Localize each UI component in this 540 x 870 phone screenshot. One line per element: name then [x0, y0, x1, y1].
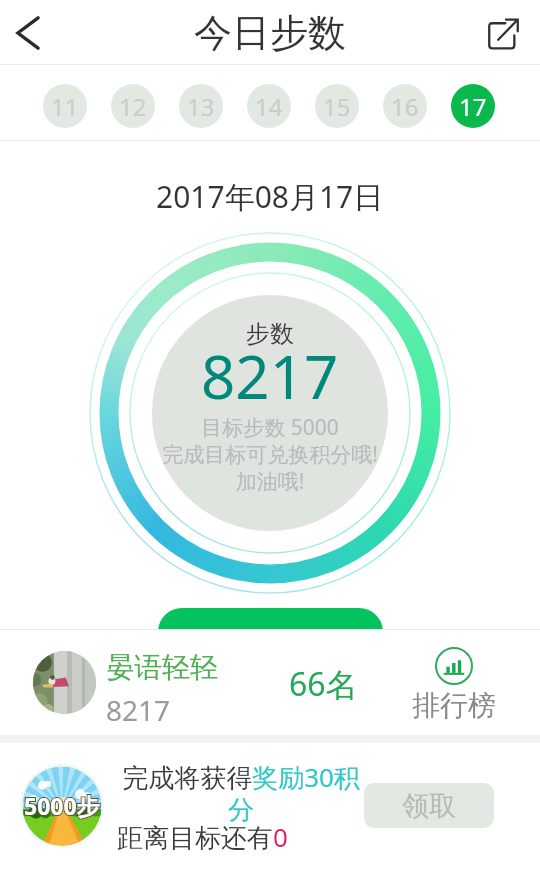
button[interactable]: 16 — [383, 84, 427, 128]
staticText: 5000步 — [24, 790, 100, 821]
staticText: 66名 — [289, 662, 358, 706]
staticText: 16 — [391, 90, 419, 123]
staticText: 15 — [323, 90, 351, 123]
staticText: 8217 — [106, 691, 171, 729]
staticText: 5000步 — [24, 790, 100, 821]
button[interactable]: 13 — [179, 84, 223, 128]
button[interactable]: 排行榜 — [412, 647, 496, 723]
button[interactable]: 晏语轻轻 — [0, 630, 540, 735]
button[interactable]: 14 — [247, 84, 291, 128]
staticText: 距离目标还有0 — [117, 819, 288, 855]
button[interactable]: Share — [484, 5, 540, 61]
staticText: 17 — [459, 90, 487, 123]
button[interactable]: 12 — [111, 84, 155, 128]
button[interactable]: 11 — [43, 84, 87, 128]
staticText: 14 — [255, 90, 283, 123]
button[interactable]: Back — [0, 5, 56, 61]
staticText: 目标步数 5000 完成目标可兑换积分哦! 加油哦! — [162, 413, 378, 496]
staticText: 11 — [51, 90, 79, 123]
staticText: 排行榜 — [412, 688, 496, 723]
staticText: 2017年08月17日 — [156, 176, 384, 217]
staticText: 今日步数 — [194, 9, 346, 57]
staticText: 步数 — [246, 319, 294, 349]
button[interactable] — [158, 608, 383, 686]
button[interactable]: 17 — [451, 84, 495, 128]
staticText: 晏语轻轻 — [106, 650, 218, 685]
staticText: 13 — [187, 90, 215, 123]
staticText: 8217 — [201, 335, 339, 417]
button[interactable]: 领取 — [364, 783, 494, 828]
button[interactable]: 15 — [315, 84, 359, 128]
staticText: 12 — [119, 90, 147, 123]
staticText: 完成将获得奖励30积分 — [117, 759, 365, 827]
staticText: 领取 — [402, 789, 456, 823]
